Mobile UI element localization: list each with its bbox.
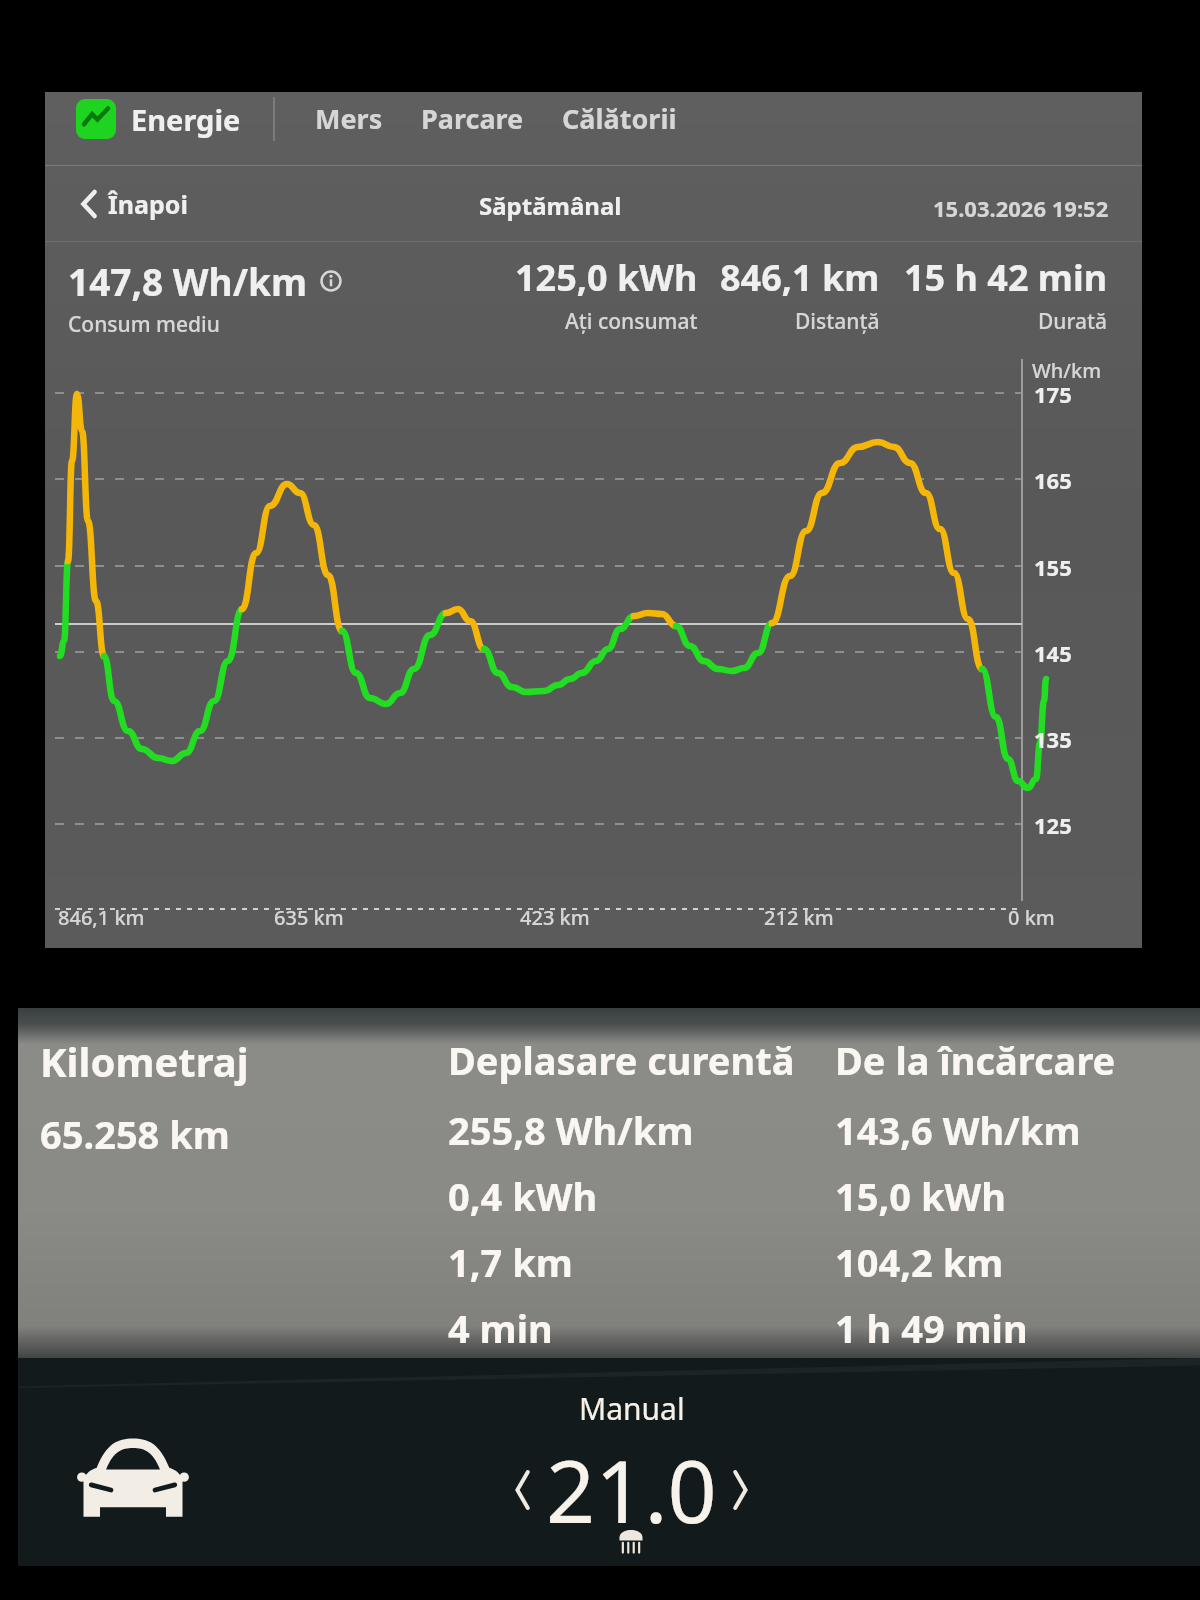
staticText: 423 km [520,904,590,931]
staticText: Înapoi [108,187,188,221]
button[interactable]: Dezaburire [614,1526,648,1554]
button[interactable]: Controale climatizare vehicul [78,1435,188,1521]
staticText: 0,4 kWh [448,1170,598,1222]
staticText: 125 [1034,810,1072,840]
button[interactable]: Înapoi [73,179,196,229]
staticText: Energie [131,100,241,139]
staticText: 212 km [764,904,834,931]
staticText: 21.0 [546,1431,717,1548]
staticText: Parcare [421,100,524,137]
staticText: 15.03.2026 19:52 [933,193,1109,223]
staticText: 104,2 km [835,1236,1004,1288]
staticText: Kilometraj [40,1034,249,1088]
staticText: 4 min [448,1302,553,1354]
staticText: 135 [1034,724,1072,754]
staticText: Ați consumat [565,307,698,336]
staticText: 15 h 42 min [904,253,1108,302]
staticText: Călătorii [562,100,677,137]
staticText: Mers [315,100,383,137]
staticText: 635 km [274,904,344,931]
staticText: 145 [1034,638,1072,668]
staticText: 155 [1034,552,1072,582]
button[interactable]: Mers [307,92,391,145]
button[interactable]: Crește temperatura [723,1463,757,1517]
staticText: Durată [1038,307,1108,336]
button[interactable]: Călătorii [554,92,685,145]
staticText: 0 km [1008,904,1055,931]
staticText: 1,7 km [448,1236,573,1288]
staticText: 165 [1034,465,1072,495]
staticText: 125,0 kWh [515,253,698,302]
button[interactable]: Scade temperatura [506,1463,540,1517]
staticText: 143,6 Wh/km [835,1104,1081,1156]
button[interactable]: Informații [320,270,342,292]
button[interactable]: Energie [76,93,241,145]
staticText: Deplasare curentă [448,1034,795,1086]
staticText: Distanță [795,307,880,336]
staticText: De la încărcare [835,1034,1116,1086]
staticText: 1 h 49 min [835,1302,1028,1354]
staticText: 846,1 km [720,253,880,302]
staticText: 15,0 kWh [835,1170,1006,1222]
staticText: Consum mediu [68,310,220,339]
staticText: 147,8 Wh/km [68,256,308,306]
button[interactable]: Parcare [413,92,532,145]
staticText: 175 [1034,379,1072,409]
staticText: Manual [579,1388,685,1429]
staticText: 255,8 Wh/km [448,1104,694,1156]
staticText: Săptămânal [479,189,622,222]
staticText: 846,1 km [58,904,145,931]
staticText: Wh/km [1032,357,1102,384]
staticText: 65.258 km [40,1108,230,1160]
